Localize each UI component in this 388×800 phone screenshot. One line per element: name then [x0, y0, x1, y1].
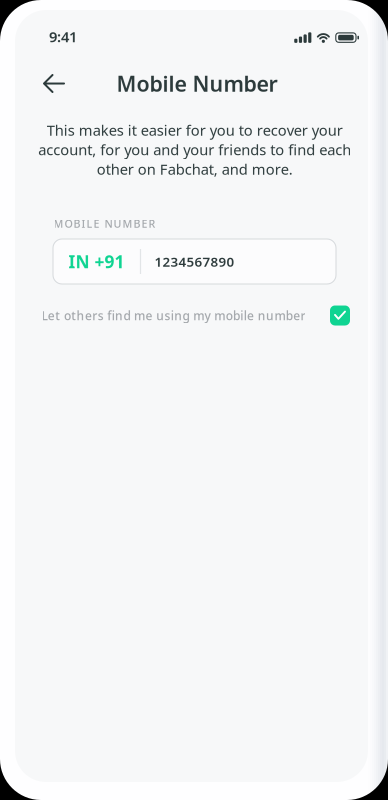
staticText: Mobile Number	[116, 69, 277, 98]
button[interactable]: Back	[32, 61, 76, 105]
staticText: 9:41	[49, 27, 77, 46]
button[interactable]: Let others find me using my mobile numbe…	[330, 305, 350, 325]
staticText: 1234567890	[154, 253, 234, 270]
staticText: IN +91	[68, 250, 124, 273]
staticText: Let others find me using my mobile numbe…	[41, 307, 305, 323]
staticText: This makes it easier for you to recover …	[38, 120, 351, 179]
staticText: M O B I L E N U M B E R	[53, 216, 155, 231]
